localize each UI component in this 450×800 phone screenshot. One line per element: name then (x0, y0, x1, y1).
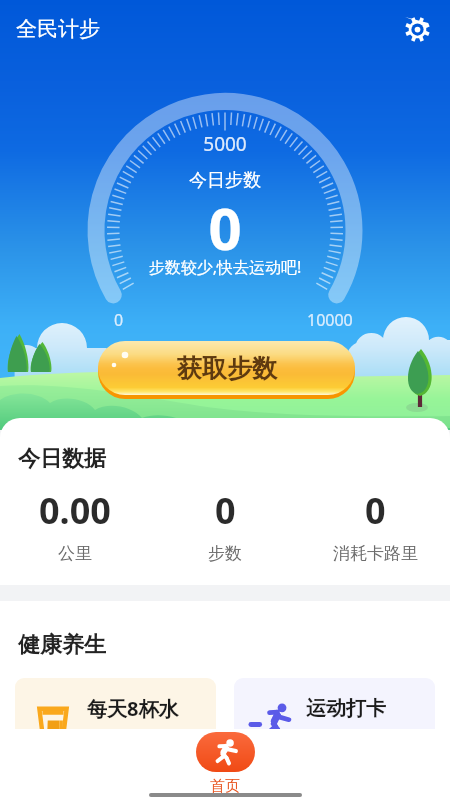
staticText: 首页 (210, 777, 240, 796)
staticText: 10000 (307, 309, 353, 331)
staticText: 0 (114, 309, 124, 331)
staticText: 每天8杯水 (87, 695, 179, 722)
staticText: 公里 (58, 543, 92, 564)
staticText: 步数 (208, 543, 242, 564)
staticText: 0.00 (39, 486, 111, 535)
button[interactable]: Settings (398, 10, 436, 48)
button[interactable]: 每天8杯水 (15, 678, 216, 764)
staticText: 运动打卡 (306, 696, 386, 721)
staticText: 5000 (0, 131, 450, 157)
staticText: 0 (215, 486, 236, 535)
staticText: 0 (0, 188, 450, 267)
button[interactable]: 首页 (0, 729, 450, 796)
staticText: 全民计步 (16, 16, 100, 42)
button[interactable]: 运动打卡 (234, 678, 435, 764)
staticText: 步数较少,快去运动吧! (0, 256, 450, 278)
staticText: 0 (365, 486, 386, 535)
staticText: 消耗卡路里 (333, 543, 418, 564)
staticText: 获取步数 (177, 353, 277, 384)
button[interactable]: 获取步数 (98, 341, 355, 395)
staticText: 健康养生 (18, 631, 106, 659)
staticText: 今日步数 (0, 169, 450, 192)
staticText: 今日数据 (18, 445, 106, 473)
